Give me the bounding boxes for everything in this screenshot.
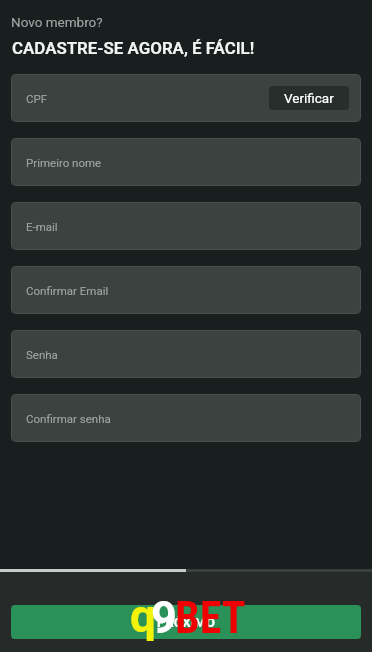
button[interactable]: PRÓXIMO	[11, 605, 361, 639]
staticText: Confirmar Email	[26, 284, 109, 297]
button[interactable]: CPF	[12, 75, 360, 121]
staticText: CPF	[26, 92, 48, 105]
button[interactable]: Primeiro nome	[12, 139, 360, 185]
staticText: E-mail	[26, 220, 58, 233]
button[interactable]: E-mail	[12, 203, 360, 249]
staticText: BET	[175, 592, 246, 644]
staticText: 9	[151, 591, 177, 644]
staticText: Primeiro nome	[26, 156, 102, 169]
button[interactable]: Verificar	[269, 86, 349, 110]
button[interactable]: Senha	[12, 331, 360, 377]
staticText: Novo membro?	[11, 14, 103, 30]
staticText: Confirmar senha	[26, 412, 111, 425]
staticText: q	[130, 589, 156, 643]
button[interactable]: Confirmar Email	[12, 267, 360, 313]
button[interactable]: Confirmar senha	[12, 395, 360, 441]
staticText: Senha	[26, 348, 58, 361]
staticText: Verificar	[284, 90, 334, 106]
staticText: CADASTRE-SE AGORA, É FÁCIL!	[12, 38, 255, 58]
staticText: PRÓXIMO	[157, 615, 215, 630]
